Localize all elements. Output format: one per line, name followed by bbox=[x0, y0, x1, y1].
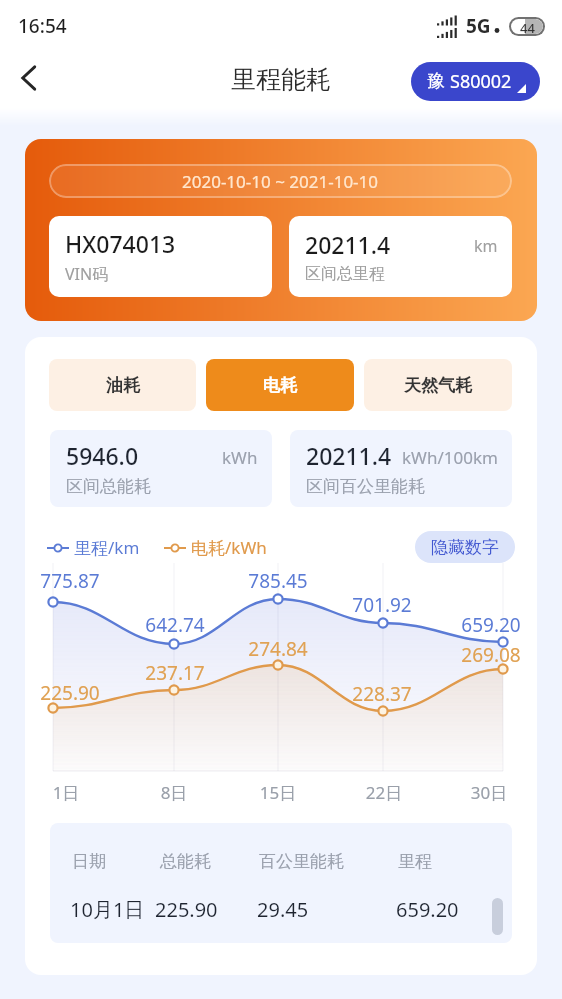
button[interactable]: 油耗 bbox=[49, 359, 196, 411]
staticText: 785.45 bbox=[245, 568, 311, 594]
button[interactable]: 豫 bbox=[411, 62, 540, 101]
staticText: 区间百公里能耗 bbox=[306, 476, 425, 497]
staticText: 15日 bbox=[245, 781, 311, 804]
staticText: 659.20 bbox=[396, 896, 459, 923]
staticText: 20211.4 bbox=[306, 440, 392, 471]
staticText: 隐藏数字 bbox=[431, 537, 499, 557]
staticText: 225.90 bbox=[155, 896, 257, 923]
staticText: 百公里能耗 bbox=[259, 851, 398, 872]
staticText: 642.74 bbox=[142, 612, 208, 638]
staticText: 天然气耗 bbox=[404, 375, 472, 396]
staticText: 里程能耗 bbox=[231, 64, 331, 95]
staticText: 里程/km bbox=[74, 536, 140, 559]
staticText: 274.84 bbox=[245, 636, 311, 662]
staticText: kWh/100km bbox=[402, 446, 498, 469]
staticText: 2020-10-10 ~ 2021-10-10 bbox=[182, 170, 379, 193]
staticText: 269.08 bbox=[458, 642, 524, 668]
staticText: 237.17 bbox=[142, 660, 208, 686]
staticText: 豫 bbox=[427, 70, 445, 93]
button[interactable]: 电耗 bbox=[206, 359, 354, 411]
staticText: 16:54 bbox=[18, 13, 67, 39]
staticText: 659.20 bbox=[458, 612, 524, 638]
staticText: 总能耗 bbox=[160, 851, 259, 872]
staticText: 44 bbox=[520, 19, 535, 34]
staticText: 油耗 bbox=[106, 375, 140, 396]
staticText: 22日 bbox=[351, 781, 417, 804]
staticText: 5G bbox=[466, 13, 491, 39]
staticText: 29.45 bbox=[257, 896, 396, 923]
staticText: VIN码 bbox=[65, 263, 109, 285]
staticText: 8日 bbox=[141, 781, 207, 804]
staticText: 5946.0 bbox=[66, 440, 139, 471]
staticText: HX074013 bbox=[65, 228, 176, 259]
staticText: 1日 bbox=[33, 781, 99, 804]
staticText: S80002 bbox=[450, 69, 512, 94]
staticText: 701.92 bbox=[349, 592, 415, 618]
button[interactable]: 天然气耗 bbox=[364, 359, 512, 411]
staticText: 225.90 bbox=[37, 680, 103, 706]
staticText: 10月1日 bbox=[70, 896, 155, 923]
staticText: 电耗/kWh bbox=[191, 536, 267, 559]
staticText: 20211.4 bbox=[305, 229, 391, 260]
staticText: kWh bbox=[222, 446, 258, 469]
staticText: 30日 bbox=[456, 781, 522, 804]
button[interactable]: 隐藏数字 bbox=[415, 531, 515, 563]
staticText: 区间总能耗 bbox=[66, 476, 151, 497]
staticText: 区间总里程 bbox=[305, 264, 385, 284]
staticText: 里程 bbox=[398, 851, 432, 872]
staticText: km bbox=[474, 235, 498, 257]
staticText: 228.37 bbox=[349, 681, 415, 707]
staticText: 日期 bbox=[72, 851, 160, 872]
staticText: 电耗 bbox=[263, 375, 297, 396]
staticText: 775.87 bbox=[37, 568, 103, 594]
button[interactable]: Back bbox=[7, 56, 51, 100]
